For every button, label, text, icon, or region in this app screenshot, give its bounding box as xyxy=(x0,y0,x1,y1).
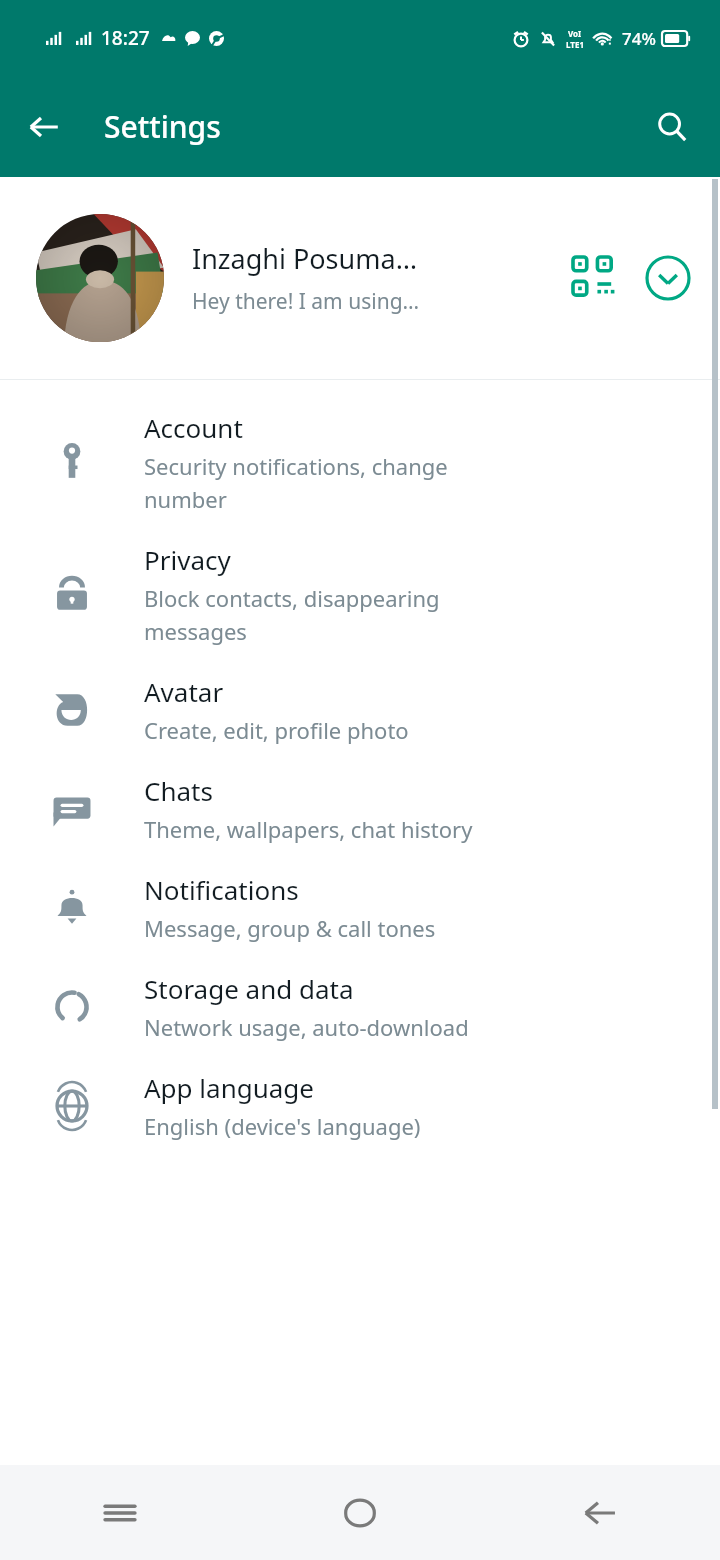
staticText: Message, group & call tones xyxy=(144,913,436,943)
button[interactable]: Storage and data xyxy=(0,951,720,1050)
button[interactable]: Inzaghi Posuma… xyxy=(0,177,720,379)
staticText: Create, edit, profile photo xyxy=(144,715,409,745)
staticText: VoI xyxy=(568,28,582,39)
staticText: Hey there! I am using… xyxy=(192,287,420,316)
staticText: Notifications xyxy=(144,872,299,907)
button[interactable]: Privacy xyxy=(0,522,720,654)
staticText: Security notifications, change number xyxy=(144,451,448,514)
staticText: Account xyxy=(144,410,243,445)
button[interactable]: Home xyxy=(317,1470,403,1556)
staticText: Storage and data xyxy=(144,971,354,1006)
staticText: App language xyxy=(144,1070,315,1105)
button[interactable]: Notifications xyxy=(0,852,720,951)
staticText: Settings xyxy=(104,106,221,147)
staticText: Theme, wallpapers, chat history xyxy=(144,814,473,844)
button[interactable]: Back xyxy=(14,97,74,157)
button[interactable]: Account xyxy=(0,402,720,522)
button[interactable]: Avatar xyxy=(0,654,720,753)
staticText: 18:27 xyxy=(101,25,150,51)
button[interactable]: Back xyxy=(557,1470,643,1556)
button[interactable]: Expand profile xyxy=(640,250,696,306)
staticText: Chats xyxy=(144,773,213,808)
staticText: Network usage, auto-download xyxy=(144,1012,469,1042)
staticText: LTE1 xyxy=(566,39,584,50)
button[interactable]: App language xyxy=(0,1050,720,1149)
button[interactable]: QR code xyxy=(566,250,622,306)
staticText: 74% xyxy=(622,27,656,50)
staticText: Inzaghi Posuma… xyxy=(192,240,417,277)
staticText: Block contacts, disappearing messages xyxy=(144,583,440,646)
staticText: Avatar xyxy=(144,674,224,709)
button[interactable]: Search xyxy=(642,97,702,157)
button[interactable]: Chats xyxy=(0,753,720,852)
button[interactable]: Recent apps xyxy=(77,1470,163,1556)
staticText: Privacy xyxy=(144,542,231,577)
staticText: English (device's language) xyxy=(144,1111,421,1141)
